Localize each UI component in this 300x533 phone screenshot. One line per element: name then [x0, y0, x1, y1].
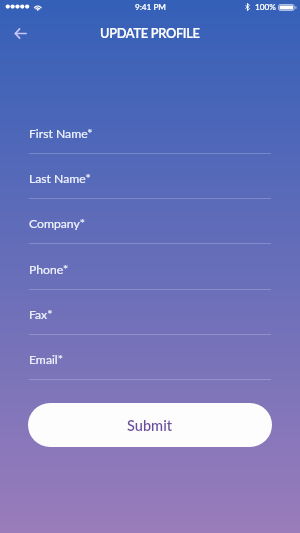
button[interactable]: Email*: [29, 349, 271, 380]
button[interactable]: First Name*: [29, 123, 271, 154]
button[interactable]: Submit: [28, 403, 272, 447]
button[interactable]: Last Name*: [29, 168, 271, 199]
staticText: Submit: [127, 417, 173, 434]
staticText: Company*: [29, 216, 85, 231]
staticText: Email*: [29, 352, 63, 367]
staticText: UPDATE PROFILE: [100, 25, 200, 40]
staticText: Last Name*: [29, 171, 91, 186]
button[interactable]: Fax*: [29, 304, 271, 335]
staticText: 9:41 PM: [135, 2, 166, 12]
button[interactable]: Phone*: [29, 259, 271, 290]
button[interactable]: Company*: [29, 213, 271, 244]
staticText: Phone*: [29, 262, 69, 277]
staticText: Fax*: [29, 307, 53, 322]
button[interactable]: Back: [7, 20, 34, 47]
staticText: First Name*: [29, 126, 93, 141]
staticText: 100%: [255, 2, 276, 12]
